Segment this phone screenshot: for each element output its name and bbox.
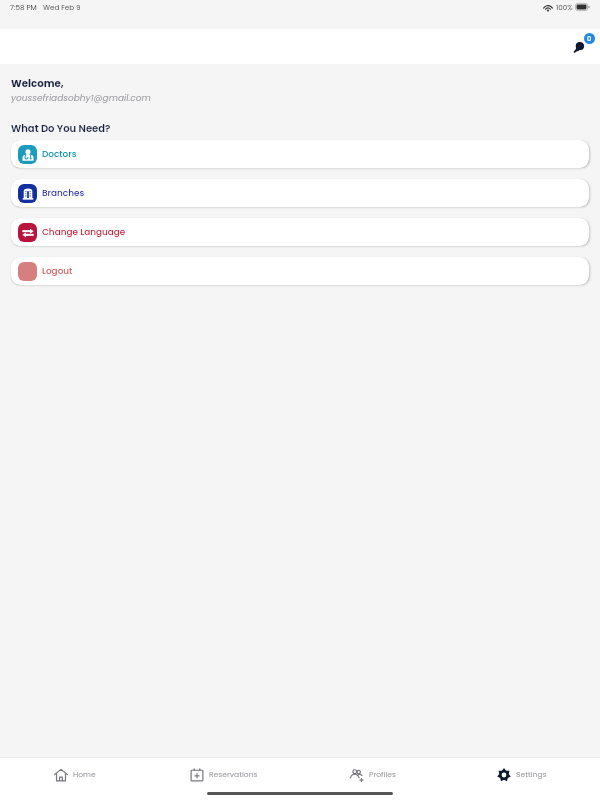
- staticText: What Do You Need?: [11, 121, 111, 135]
- button[interactable]: Home: [0, 763, 149, 786]
- staticText: 7:58 PM: [10, 2, 37, 12]
- staticText: Doctors: [42, 148, 77, 160]
- staticText: Logout: [42, 265, 73, 277]
- staticText: 100%: [556, 2, 573, 12]
- staticText: youssefriadsobhy1@gmail.com: [11, 92, 151, 105]
- button[interactable]: Change Language: [11, 218, 589, 246]
- staticText: Settings: [516, 769, 547, 780]
- staticText: Wed Feb 9: [43, 2, 81, 12]
- staticText: Welcome,: [11, 76, 64, 90]
- button[interactable]: Profiles: [298, 763, 447, 786]
- button[interactable]: Reservations: [149, 763, 298, 786]
- staticText: Change Language: [42, 226, 126, 238]
- staticText: 0: [587, 34, 592, 43]
- staticText: Branches: [42, 187, 85, 199]
- button[interactable]: Notifications: [568, 36, 590, 58]
- button[interactable]: Branches: [11, 179, 589, 207]
- staticText: Reservations: [209, 769, 258, 780]
- button[interactable]: Doctors: [11, 140, 589, 168]
- staticText: Home: [73, 769, 96, 780]
- button[interactable]: Settings: [447, 763, 596, 786]
- button[interactable]: Logout: [11, 257, 589, 285]
- staticText: Profiles: [369, 769, 396, 780]
